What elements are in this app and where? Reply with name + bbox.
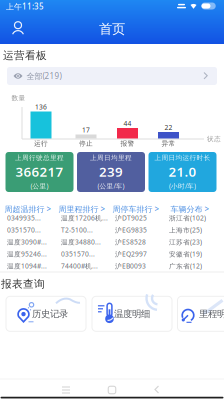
staticText: 运行 (34, 139, 48, 148)
button[interactable]: 历史记录 (6, 296, 86, 331)
staticText: 江苏省(23) (169, 238, 202, 246)
staticText: 温度17206机... (61, 214, 108, 222)
staticText: (公里) (30, 181, 48, 190)
staticText: 17 (82, 126, 90, 134)
staticText: 22 (164, 123, 172, 132)
staticText: 状态 (207, 135, 221, 143)
staticText: 366217 (15, 163, 63, 180)
staticText: 上周行驶总里程 (15, 154, 64, 162)
staticText: 异常 (161, 139, 175, 148)
staticText: 74400#机... (61, 262, 98, 270)
staticText: 广东省(12) (169, 262, 202, 270)
staticText: 温度34880... (61, 238, 101, 246)
staticText: 报警 (120, 139, 134, 148)
button[interactable]: 温度明细 (92, 296, 172, 331)
staticText: 沪EG9835 (115, 226, 147, 234)
button[interactable]: 里程明细 (177, 296, 224, 331)
staticText: 温度1094#... (7, 262, 47, 270)
staticText: 浙江省(102) (169, 214, 206, 222)
staticText: 数量 (11, 94, 25, 102)
staticText: 沪DT9025 (115, 214, 147, 222)
staticText: 里程明细 (199, 308, 224, 320)
staticText: (小时/车) (169, 181, 196, 190)
button[interactable]: 车辆分布 > (170, 204, 209, 214)
staticText: 沪EQ2997 (115, 250, 147, 258)
staticText: (公里/车) (97, 181, 124, 190)
staticText: 沪EB0093 (115, 262, 146, 270)
staticText: 136 (35, 103, 47, 111)
staticText: 停止 (79, 139, 93, 148)
button[interactable]: 最近任务 (61, 386, 71, 394)
button[interactable]: 返回 (154, 386, 159, 394)
staticText: 首页 (99, 21, 125, 37)
staticText: 安徽省(19) (169, 250, 202, 258)
staticText: 温度明细 (114, 308, 150, 320)
staticText: 21.0 (168, 163, 196, 180)
staticText: 0351570... (61, 250, 95, 258)
staticText: 全部(219) (26, 71, 61, 81)
staticText: 车辆分布 > (170, 204, 209, 214)
staticText: 历史记录 (32, 308, 68, 320)
staticText: 0349935... (7, 214, 41, 222)
button[interactable]: 周停车排行 > (112, 204, 159, 214)
staticText: 上周日均里程 (90, 154, 132, 162)
staticText: 44 (123, 119, 131, 128)
staticText: 报表查询 (1, 277, 45, 290)
button[interactable]: 主屏幕 (108, 386, 116, 394)
button[interactable]: 周超温排行 > (4, 204, 51, 214)
staticText: T2-5100... (61, 226, 93, 234)
staticText: 上午11:35 (6, 1, 44, 12)
staticText: 239 (99, 163, 123, 180)
staticText: 温度95246... (7, 250, 47, 258)
staticText: 上海市(25) (169, 226, 202, 234)
button[interactable]: 个人中心 (8, 19, 28, 39)
staticText: 运营看板 (3, 49, 47, 62)
staticText: 周超温排行 > (4, 204, 51, 214)
staticText: 上周日均运行时长 (154, 154, 210, 162)
staticText: 周里程排行 > (58, 204, 105, 214)
button[interactable]: 周里程排行 > (58, 204, 105, 214)
staticText: 周停车排行 > (112, 204, 159, 214)
button[interactable]: 全部(219) (7, 67, 217, 85)
staticText: 温度3090#... (7, 238, 47, 246)
staticText: 沪ES8528 (115, 238, 146, 246)
staticText: 0351570... (7, 226, 41, 234)
